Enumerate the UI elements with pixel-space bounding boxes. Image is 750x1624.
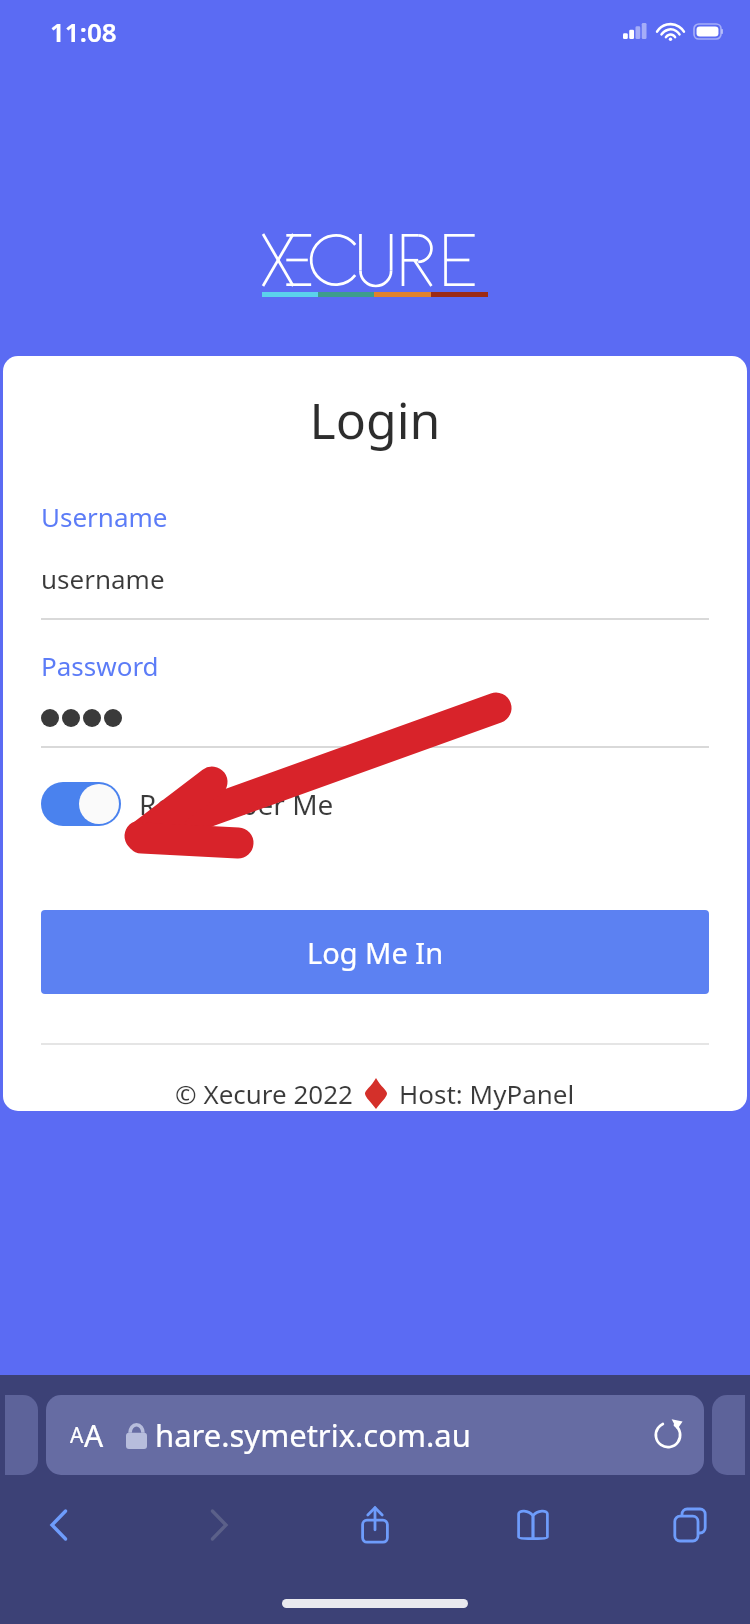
staticText: A bbox=[84, 1415, 104, 1456]
staticText: Login bbox=[41, 386, 709, 454]
button[interactable]: Bookmarks bbox=[503, 1495, 563, 1555]
button[interactable]: A bbox=[46, 1395, 704, 1475]
staticText: hare.symetrix.com.au bbox=[155, 1414, 652, 1456]
button[interactable]: Forward bbox=[188, 1495, 248, 1555]
button[interactable]: Tabs bbox=[660, 1495, 720, 1555]
button[interactable]: Remember Me bbox=[41, 782, 334, 826]
staticText: Host: MyPanel bbox=[399, 1076, 575, 1111]
button[interactable]: Log Me In bbox=[41, 910, 709, 994]
button[interactable]: Back bbox=[30, 1495, 90, 1555]
staticText: Password bbox=[41, 648, 159, 683]
button[interactable]: Share bbox=[345, 1495, 405, 1555]
other: Reload bbox=[652, 1419, 684, 1451]
staticText: 11:08 bbox=[50, 14, 117, 49]
staticText: A bbox=[70, 1421, 84, 1450]
staticText: Remember Me bbox=[139, 785, 334, 823]
staticText: Username bbox=[41, 499, 168, 534]
staticText: username bbox=[41, 561, 165, 596]
staticText: © Xecure 2022 bbox=[175, 1076, 353, 1111]
staticText: Log Me In bbox=[307, 933, 444, 972]
